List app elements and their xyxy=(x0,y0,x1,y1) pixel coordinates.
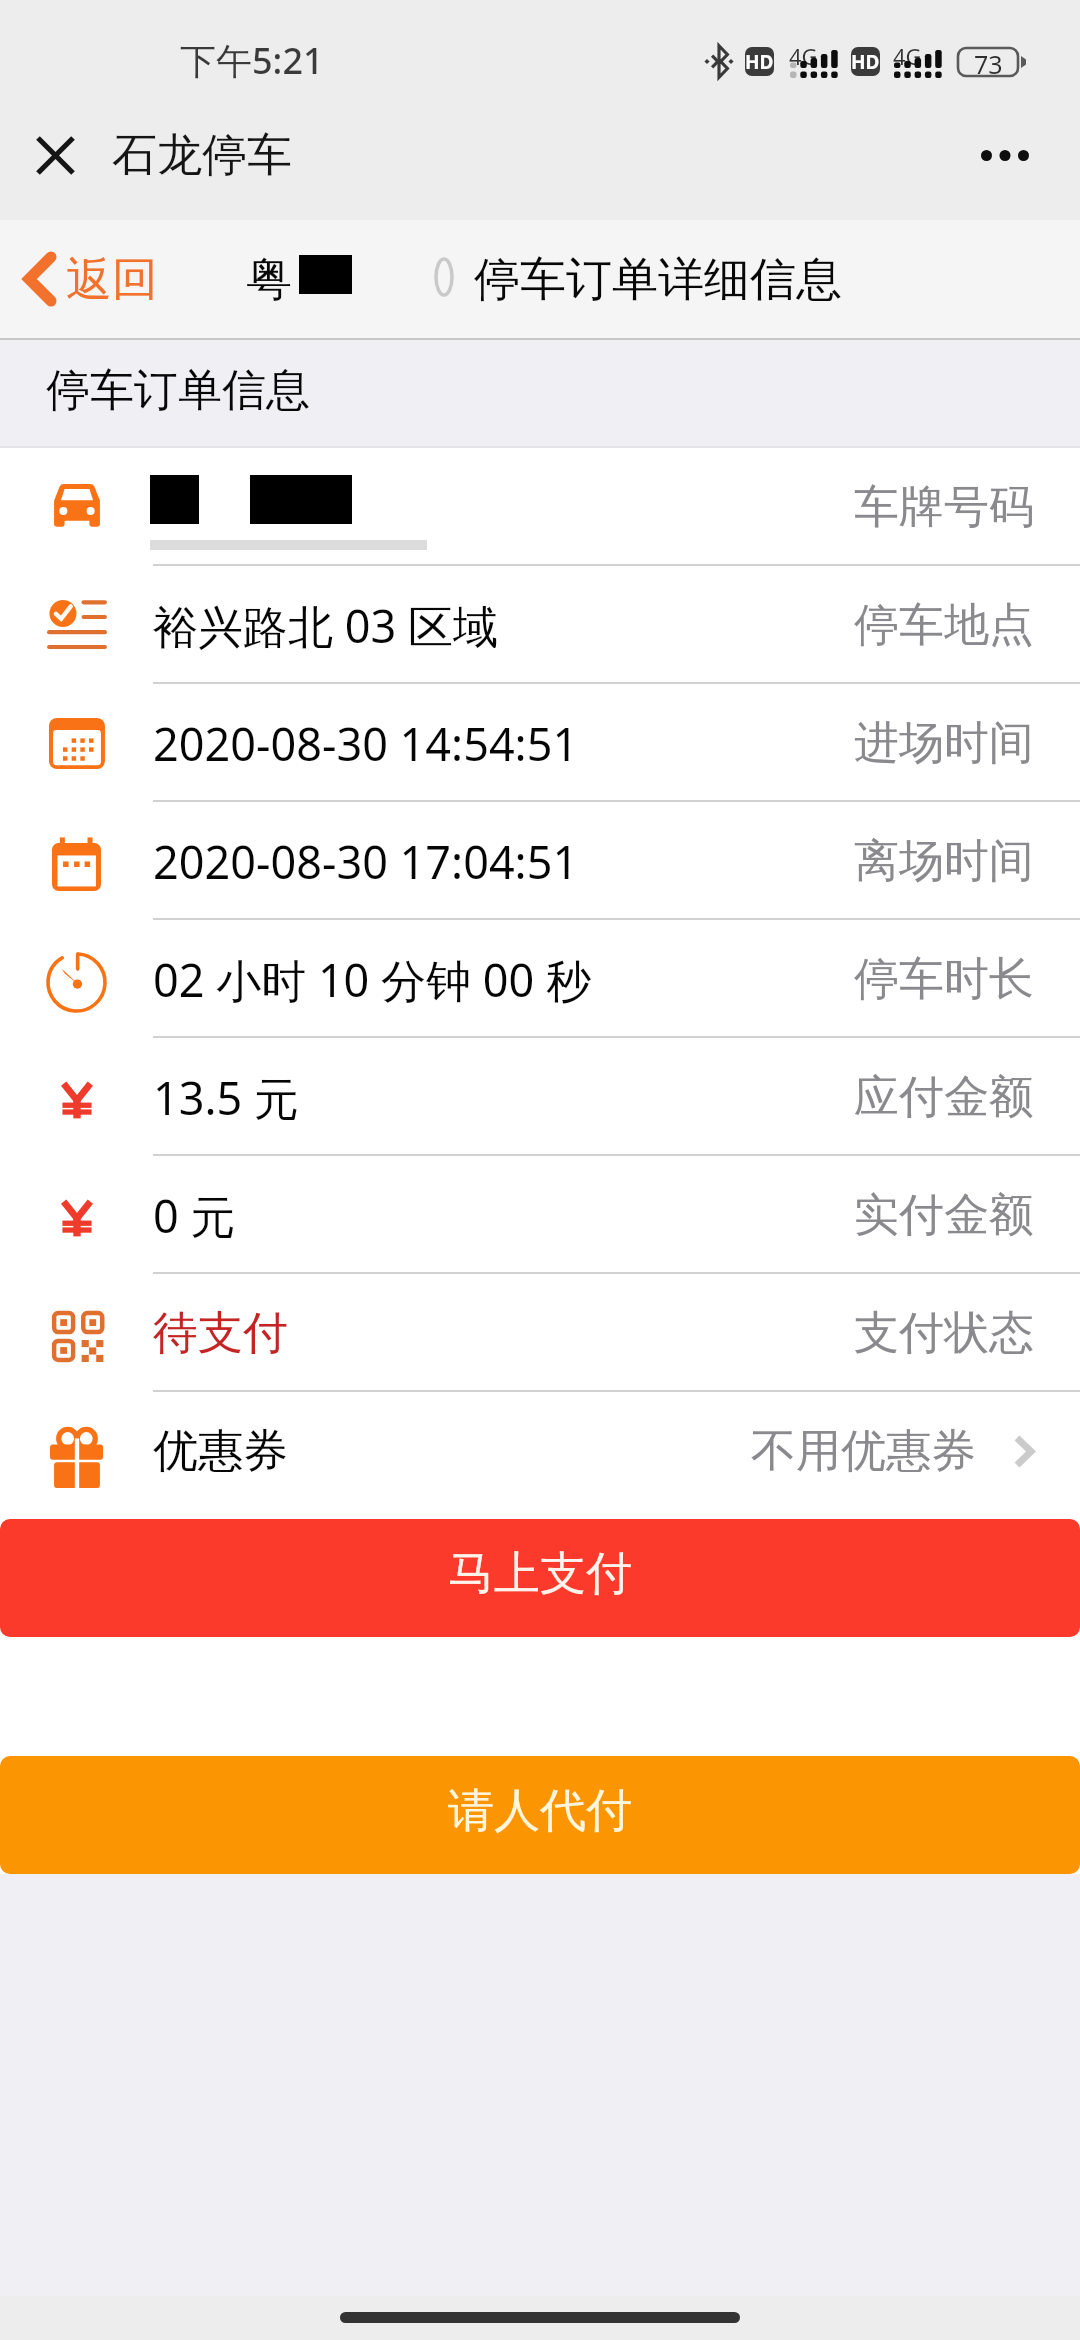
button[interactable]: 02 小时 10 分钟 00 秒 xyxy=(0,920,1080,1038)
staticText: 应付金额 xyxy=(854,1069,1034,1126)
staticText: HD xyxy=(745,49,774,75)
staticText: 粤 xyxy=(246,251,292,309)
staticText: 支付状态 xyxy=(854,1305,1034,1362)
staticText: 马上支付 xyxy=(448,1545,632,1603)
staticText: 73 xyxy=(974,47,1003,77)
staticText: 13.5 元 xyxy=(153,1067,299,1128)
button[interactable]: 马上支付 xyxy=(0,1519,1080,1637)
staticText: 4G xyxy=(893,41,922,71)
staticText: 停车订单详细信息 xyxy=(474,251,842,309)
staticText: 请人代付 xyxy=(448,1782,632,1840)
staticText: 待支付 xyxy=(153,1305,288,1362)
staticText: 下午5:21 xyxy=(180,36,324,85)
button[interactable]: 裕兴路北 03 区域 xyxy=(0,566,1080,684)
button[interactable]: More options xyxy=(957,120,1053,190)
button[interactable]: 待支付 xyxy=(0,1274,1080,1392)
staticText: 02 小时 10 分钟 00 秒 xyxy=(153,949,591,1010)
staticText: 离场时间 xyxy=(854,833,1034,890)
staticText: 进场时间 xyxy=(854,715,1034,772)
staticText: 返回 xyxy=(66,251,158,309)
staticText: 停车时长 xyxy=(854,951,1034,1008)
button[interactable]: 0 元 xyxy=(0,1156,1080,1274)
button[interactable]: 2020-08-30 17:04:51 xyxy=(0,802,1080,920)
staticText: 4G xyxy=(789,41,818,71)
button[interactable]: Close xyxy=(16,116,94,194)
staticText: 停车地点 xyxy=(854,597,1034,654)
button[interactable]: 优惠券 xyxy=(0,1392,1080,1510)
staticText: 实付金额 xyxy=(854,1187,1034,1244)
staticText: HD xyxy=(851,49,880,75)
button[interactable]: 请人代付 xyxy=(0,1756,1080,1874)
button[interactable]: 返回 xyxy=(0,220,158,338)
staticText: 2020-08-30 17:04:51 xyxy=(153,831,579,892)
button[interactable]: 2020-08-30 14:54:51 xyxy=(0,684,1080,802)
button[interactable]: 13.5 元 xyxy=(0,1038,1080,1156)
staticText: 不用优惠券 xyxy=(751,1423,976,1480)
staticText: 石龙停车 xyxy=(112,127,292,184)
button[interactable]: 车牌号码 xyxy=(0,448,1080,566)
staticText: 停车订单信息 xyxy=(46,363,310,418)
staticText: 0 元 xyxy=(153,1185,236,1246)
staticText: 裕兴路北 03 区域 xyxy=(153,595,498,656)
staticText: 2020-08-30 14:54:51 xyxy=(153,713,579,774)
staticText: 车牌号码 xyxy=(854,479,1034,536)
staticText: 优惠券 xyxy=(153,1423,288,1480)
